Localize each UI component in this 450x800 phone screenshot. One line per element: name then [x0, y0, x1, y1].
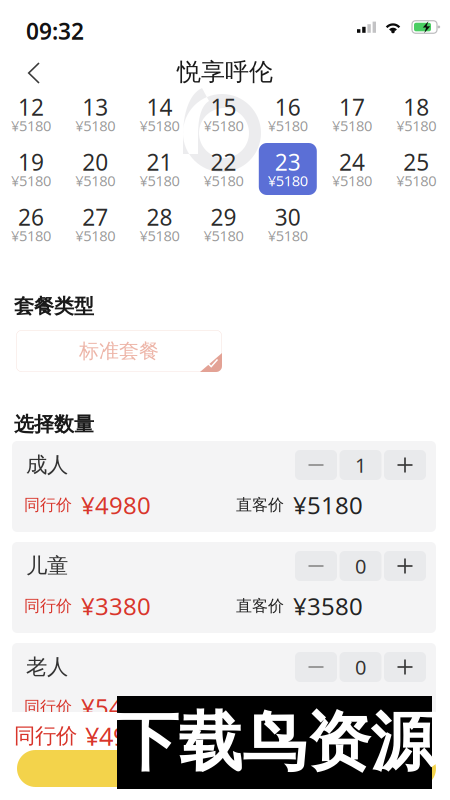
staticText: ¥5180 [75, 171, 115, 190]
staticText: 悦享呼伦 [177, 57, 273, 87]
staticText: ¥5180 [11, 171, 51, 190]
staticText: ¥5180 [396, 171, 436, 190]
staticText: ¥5180 [75, 226, 115, 245]
button[interactable]: Decrease quantity [295, 551, 337, 581]
button[interactable]: Back [8, 53, 60, 93]
button[interactable]: Decrease quantity [295, 652, 337, 682]
staticText: ¥5180 [11, 116, 51, 135]
staticText: 同行价 [24, 697, 72, 717]
button[interactable]: 22 [195, 143, 253, 195]
staticText: 同行价 [24, 495, 72, 515]
button[interactable]: 25 [387, 143, 445, 195]
button[interactable]: 标准套餐 [16, 330, 222, 372]
staticText: 17 [339, 92, 365, 122]
staticText: 27 [82, 202, 108, 232]
staticText: 13 [82, 92, 108, 122]
button[interactable]: 23 [259, 143, 317, 195]
button[interactable]: 26 [2, 198, 60, 250]
staticText: ¥5180 [204, 226, 244, 245]
staticText: 23 [275, 147, 301, 177]
button[interactable]: 21 [130, 143, 188, 195]
staticText: 老人 [26, 654, 68, 680]
staticText: ¥4980 [85, 719, 155, 753]
staticText: ¥5180 [268, 226, 308, 245]
staticText: ¥5180 [139, 116, 179, 135]
staticText: ¥5180 [396, 116, 436, 135]
staticText: 22 [211, 147, 237, 177]
staticText: ¥4980 [81, 489, 151, 521]
staticText: 19 [18, 147, 44, 177]
staticText: 立即预订 [180, 755, 272, 782]
staticText: ¥5180 [204, 116, 244, 135]
staticText: 12 [18, 92, 44, 122]
button[interactable]: 17 [323, 88, 381, 140]
button[interactable]: 18 [387, 88, 445, 140]
button[interactable]: 27 [66, 198, 124, 250]
staticText: ¥3380 [81, 590, 151, 622]
staticText: 套餐类型 [14, 294, 94, 319]
button[interactable]: Increase quantity [384, 450, 426, 480]
staticText: ¥5480 [81, 691, 151, 723]
staticText: ¥5180 [139, 171, 179, 190]
staticText: 儿童 [26, 553, 68, 579]
button[interactable]: 14 [130, 88, 188, 140]
staticText: 直客价 [236, 495, 284, 515]
staticText: ¥5180 [75, 116, 115, 135]
staticText: 14 [146, 92, 172, 122]
button[interactable]: 24 [323, 143, 381, 195]
button[interactable]: 19 [2, 143, 60, 195]
staticText: ¥5180 [332, 171, 372, 190]
staticText: 29 [211, 202, 237, 232]
staticText: ¥5180 [332, 116, 372, 135]
staticText: 标准套餐 [79, 339, 159, 363]
staticText: 下载鸟资源 [114, 703, 434, 782]
button[interactable]: Increase quantity [384, 551, 426, 581]
staticText: 18 [403, 92, 429, 122]
staticText: 直客价 [236, 697, 284, 717]
staticText: 21 [146, 147, 172, 177]
staticText: ¥5180 [139, 226, 179, 245]
button[interactable]: 13 [66, 88, 124, 140]
staticText: 09:32 [26, 16, 84, 46]
button[interactable]: 12 [2, 88, 60, 140]
button[interactable]: 16 [259, 88, 317, 140]
staticText: 16 [275, 92, 301, 122]
button[interactable]: 20 [66, 143, 124, 195]
staticText: ¥5180 [11, 226, 51, 245]
staticText: 20 [82, 147, 108, 177]
button[interactable]: 15 [195, 88, 253, 140]
staticText: ¥5680 [293, 691, 363, 723]
button[interactable]: Increase quantity [384, 652, 426, 682]
staticText: 同行价 [24, 596, 72, 616]
staticText: 30 [275, 202, 301, 232]
staticText: 25 [403, 147, 429, 177]
staticText: 28 [146, 202, 172, 232]
staticText: 0 [355, 654, 366, 680]
staticText: ¥3580 [293, 590, 363, 622]
staticText: 成人 [26, 452, 68, 478]
staticText: 同行价 [14, 723, 77, 749]
staticText: ¥5180 [204, 171, 244, 190]
button[interactable]: 立即预订 [17, 750, 436, 787]
button[interactable]: 30 [259, 198, 317, 250]
staticText: 选择数量 [14, 412, 94, 437]
button[interactable]: 29 [195, 198, 253, 250]
staticText: 直客价 [236, 596, 284, 616]
staticText: ¥5180 [268, 116, 308, 135]
staticText: 15 [211, 92, 237, 122]
button[interactable]: 28 [130, 198, 188, 250]
staticText: ¥5180 [268, 171, 308, 190]
button[interactable]: Decrease quantity [295, 450, 337, 480]
staticText: ¥5180 [293, 489, 363, 521]
staticText: 26 [18, 202, 44, 232]
staticText: 24 [339, 147, 365, 177]
staticText: 1 [355, 452, 366, 478]
staticText: 0 [355, 553, 366, 579]
